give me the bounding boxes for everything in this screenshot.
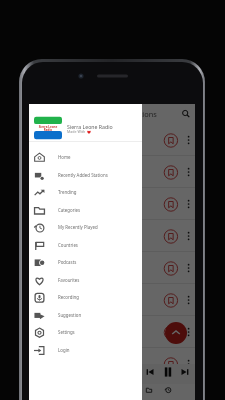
button[interactable]: Trending: [29, 183, 142, 201]
button[interactable]: More options: [181, 261, 195, 275]
button[interactable]: Search: [178, 106, 194, 122]
staticText: Podcasts: [58, 259, 77, 265]
staticText: Favourites: [58, 277, 80, 283]
staticText: Sierra Leone: [63, 333, 88, 339]
button[interactable]: Suggestion: [29, 306, 142, 324]
staticText: My Recently Played: [58, 224, 98, 230]
button[interactable]: Countries: [29, 236, 142, 254]
button[interactable]: Bookmark station: [160, 163, 178, 181]
button[interactable]: More options: [181, 229, 195, 243]
button[interactable]: Recording: [29, 288, 142, 306]
staticText: Trending: [58, 189, 77, 195]
button[interactable]: More options: [181, 357, 195, 371]
staticText: Kiss FM 104: [63, 325, 92, 332]
button[interactable]: Believers Broadcasting: [29, 348, 195, 379]
button[interactable]: Bookmark station: [160, 259, 178, 277]
staticText: Star Radio 103.5: [63, 293, 103, 300]
button[interactable]: More options: [181, 293, 195, 307]
button[interactable]: Recently played: [162, 384, 174, 396]
staticText: Sierra Leone: [63, 205, 88, 211]
button[interactable]: Scroll to top: [165, 322, 187, 344]
button[interactable]: Bookmark station: [160, 323, 178, 341]
button[interactable]: SLBC Radio 99.9: [29, 220, 195, 251]
button[interactable]: Login: [29, 341, 142, 359]
staticText: Voice of Women: [63, 261, 103, 268]
button[interactable]: Kiss FM 104: [29, 316, 195, 347]
button[interactable]: Previous: [143, 365, 157, 379]
staticText: Categories: [58, 207, 81, 213]
staticText: Recording: [58, 294, 79, 300]
staticText: Login: [58, 347, 70, 353]
staticText: Radio Democracy 98.1: [63, 133, 118, 140]
button[interactable]: More options: [181, 325, 195, 339]
button[interactable]: Capital Radio 104.9: [29, 156, 195, 187]
staticText: Countries: [58, 242, 78, 248]
button[interactable]: Favourites: [29, 271, 142, 289]
staticText: Sierra Leone Radio: [34, 125, 62, 132]
staticText: Suggestion: [58, 312, 82, 318]
staticText: Sierra Leone Radio: [67, 123, 113, 130]
button[interactable]: Recently Added Stations: [29, 166, 142, 184]
staticText: Sierra Leone: [63, 141, 88, 147]
button[interactable]: Africa Young Voices: [29, 188, 195, 219]
staticText: Sierra Leone: [63, 173, 88, 179]
button[interactable]: Star Radio 103.5: [29, 284, 195, 315]
staticText: Settings: [58, 329, 75, 335]
button[interactable]: Bookmark station: [160, 131, 178, 149]
button[interactable]: More options: [181, 133, 195, 147]
button[interactable]: Voice of Women: [29, 252, 195, 283]
button[interactable]: Home: [29, 148, 142, 166]
staticText: Home: [58, 154, 71, 160]
staticText: Recently Added Stations: [73, 109, 157, 119]
button[interactable]: Bookmark station: [160, 195, 178, 213]
button[interactable]: Categories: [29, 201, 142, 219]
button[interactable]: More options: [181, 165, 195, 179]
button[interactable]: Open navigation drawer: [33, 106, 47, 120]
button[interactable]: Next: [178, 365, 192, 379]
button[interactable]: Radio Democracy 98.1: [29, 124, 195, 155]
button[interactable]: Pause: [161, 365, 175, 379]
staticText: SLBC Radio 99.9: [63, 229, 103, 236]
staticText: Recently Added Stations: [58, 172, 108, 178]
button[interactable]: Bookmark station: [160, 227, 178, 245]
button[interactable]: Settings: [29, 323, 142, 341]
button[interactable]: Bookmark station: [160, 355, 178, 373]
staticText: Made With: [67, 129, 87, 134]
button[interactable]: Podcasts: [29, 253, 142, 271]
button[interactable]: More options: [181, 197, 195, 211]
button[interactable]: My Recently Played: [29, 218, 142, 236]
button[interactable]: Bookmark station: [160, 291, 178, 309]
button[interactable]: Categories: [143, 384, 155, 396]
